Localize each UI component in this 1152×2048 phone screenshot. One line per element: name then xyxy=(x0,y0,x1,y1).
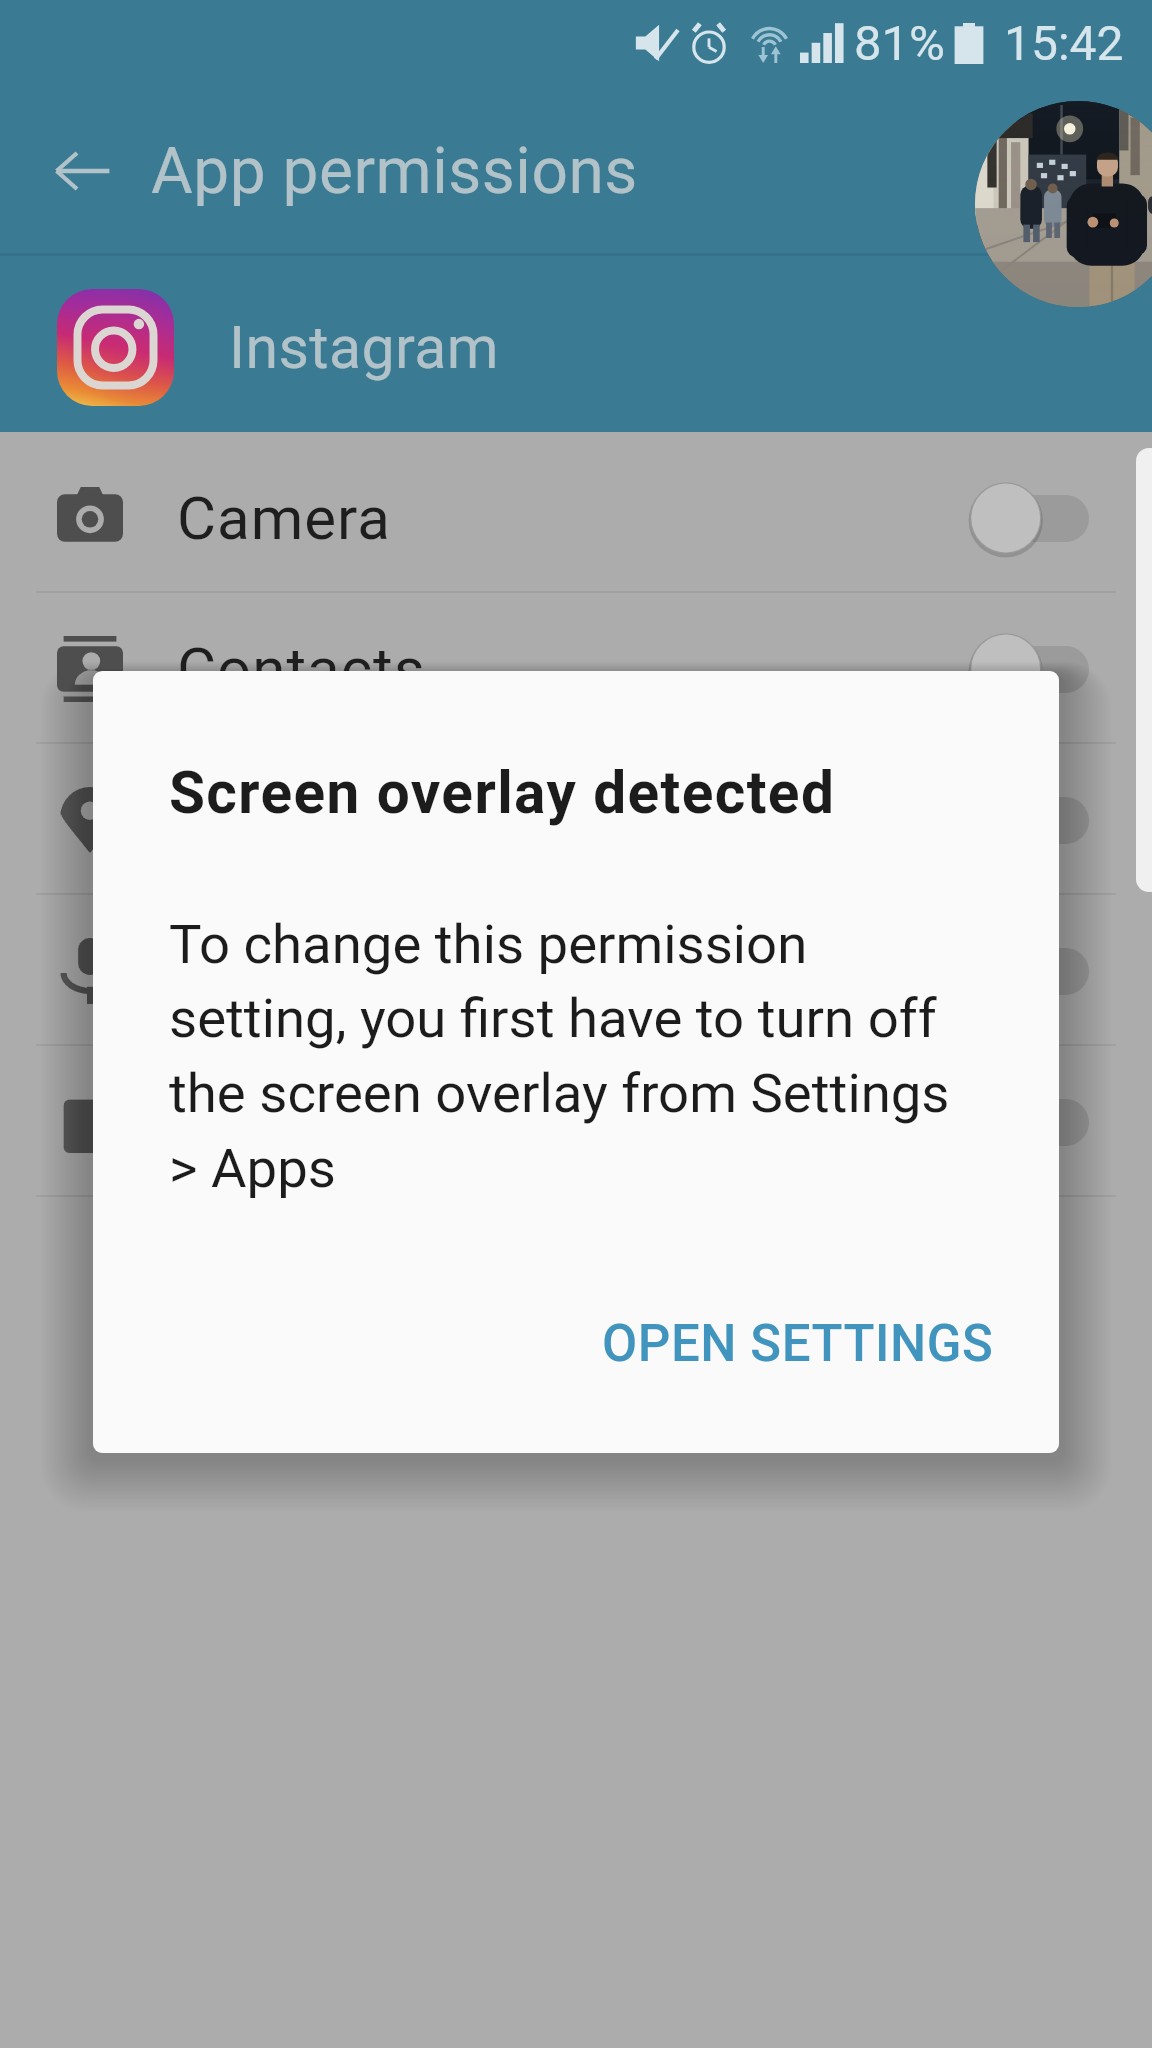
staticText: 81% xyxy=(854,15,945,72)
button[interactable]: Instagram xyxy=(0,262,1152,432)
staticText: Microphone xyxy=(177,936,506,1006)
staticText: Screen overlay detected xyxy=(169,759,836,828)
button[interactable]: Toggle Contacts permission xyxy=(970,624,1089,714)
staticText: Location xyxy=(177,785,418,855)
button[interactable]: Storage xyxy=(0,1046,1152,1197)
staticText: App permissions xyxy=(151,134,638,209)
button[interactable]: OPEN SETTINGS xyxy=(580,1296,1016,1392)
staticText: Storage xyxy=(177,1087,391,1157)
button[interactable]: Contacts xyxy=(0,593,1152,744)
button[interactable]: Camera xyxy=(0,442,1152,593)
button[interactable]: Toggle Location permission xyxy=(970,775,1089,865)
staticText: To change this permission setting, you f… xyxy=(169,912,950,1200)
staticText: OPEN SETTINGS xyxy=(602,1314,994,1374)
staticText: Contacts xyxy=(177,634,426,704)
button[interactable]: Microphone xyxy=(0,895,1152,1046)
staticText: Camera xyxy=(177,483,391,553)
staticText: 15:42 xyxy=(1004,15,1124,71)
button[interactable]: Chat head xyxy=(975,101,1152,307)
staticText: Instagram xyxy=(229,313,499,382)
button[interactable]: Toggle Camera permission xyxy=(970,473,1089,563)
button[interactable]: Back xyxy=(0,85,151,257)
button[interactable]: Location xyxy=(0,744,1152,895)
button[interactable]: Toggle Microphone permission xyxy=(970,926,1089,1016)
button[interactable]: Toggle Storage permission xyxy=(970,1077,1089,1167)
